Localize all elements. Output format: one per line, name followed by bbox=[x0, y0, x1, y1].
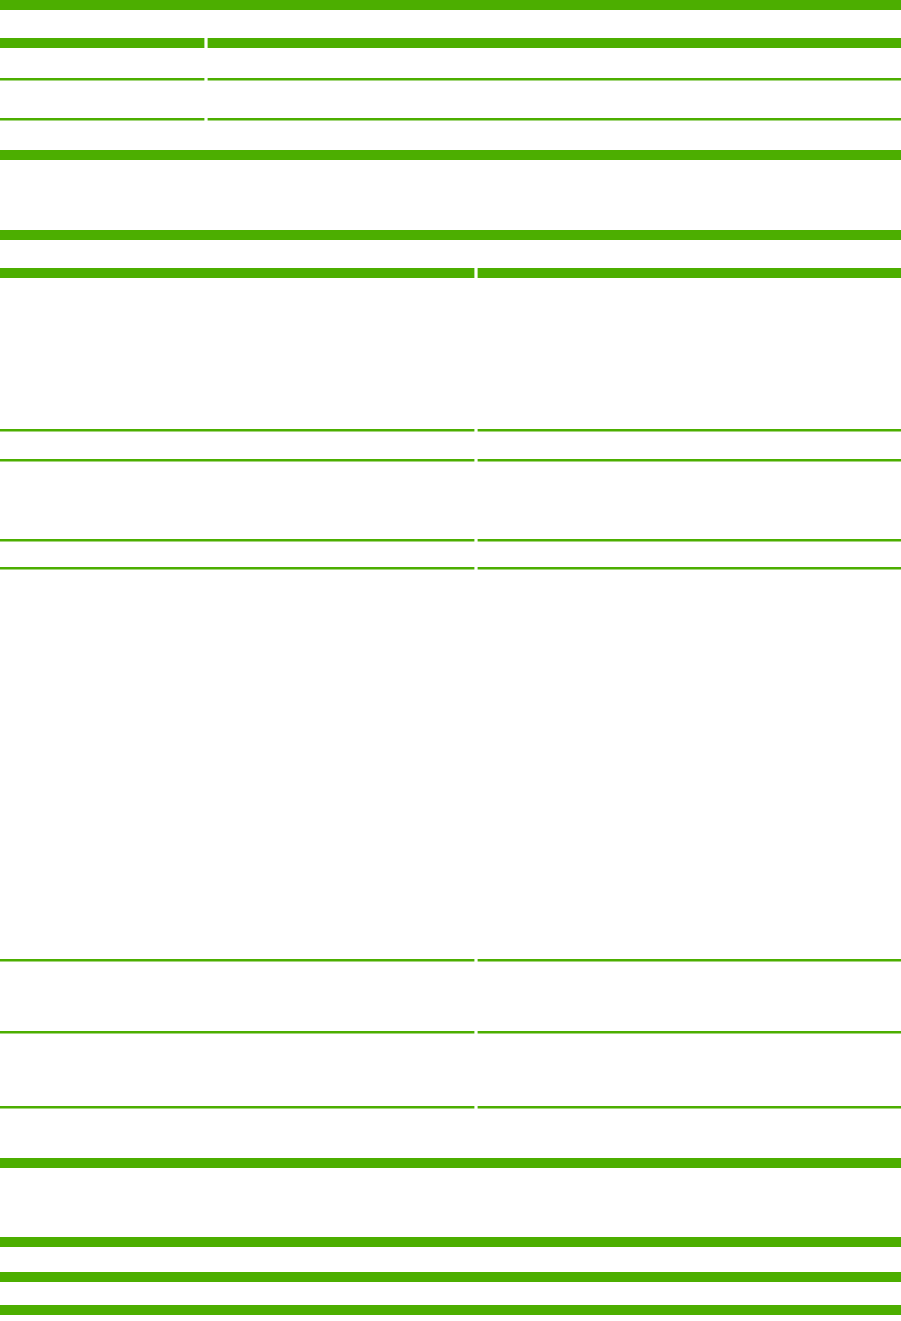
button[interactable]: Report table bbox=[0, 0, 901, 1321]
